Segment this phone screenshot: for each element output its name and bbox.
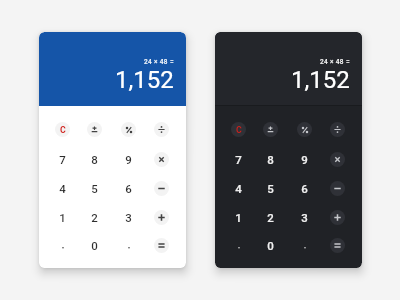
other: Multiply [158,156,165,163]
staticText: 4 [235,182,242,195]
staticText: 6 [125,182,132,195]
staticText: 1,152 [115,66,174,94]
button[interactable]: 2 [254,203,287,232]
button[interactable]: 9 [288,145,321,174]
button[interactable]: 9 [112,145,145,174]
staticText: 1 [59,211,66,224]
button[interactable]: 5 [254,174,287,203]
button[interactable]: Subtract [321,174,354,203]
button[interactable]: 1 [222,203,255,232]
button[interactable]: Divide [145,115,178,144]
button[interactable]: Multiply [321,145,354,174]
staticText: C [236,125,242,135]
staticText: 9 [301,153,308,166]
staticText: 5 [91,182,98,195]
button[interactable]: 5 [78,174,111,203]
button[interactable]: Equals [321,231,354,260]
staticText: 7 [235,153,242,166]
button[interactable]: Plus minus [78,115,111,144]
other: Decimal point [60,243,66,249]
other: Percent [301,126,309,134]
staticText: 24 × 48 = [144,58,174,66]
other: Equals [334,242,341,249]
button[interactable]: 4 [46,174,79,203]
other: Divide [158,126,165,133]
button[interactable]: Divide [321,115,354,144]
button[interactable]: Plus minus [254,115,287,144]
button[interactable]: 8 [78,145,111,174]
staticText: 8 [91,153,98,166]
button[interactable]: C [222,115,255,144]
button[interactable]: 6 [288,174,321,203]
button[interactable]: 6 [112,174,145,203]
button[interactable]: Decimal point [222,231,255,260]
button[interactable]: Subtract [145,174,178,203]
button[interactable]: Decimal point [112,231,145,260]
button[interactable]: 7 [46,145,79,174]
other: Plus minus [91,126,98,133]
other: Decimal point [236,243,242,249]
staticText: C [60,125,66,135]
button[interactable]: Decimal point [288,231,321,260]
button[interactable]: 2 [78,203,111,232]
staticText: 3 [301,211,308,224]
button[interactable]: 0 [254,231,287,260]
staticText: 2 [91,211,98,224]
other: Add [334,214,341,221]
staticText: 6 [301,182,308,195]
staticText: 24 × 48 = [320,58,350,66]
other: Decimal point [302,243,308,249]
button[interactable]: C [46,115,79,144]
button[interactable]: Add [321,203,354,232]
staticText: 1,152 [291,66,350,94]
button[interactable]: Equals [145,231,178,260]
other: Multiply [334,156,341,163]
button[interactable]: Add [145,203,178,232]
button[interactable]: 7 [222,145,255,174]
button[interactable]: Percent [112,115,145,144]
button[interactable]: 3 [288,203,321,232]
other: Subtract [334,185,341,192]
other: Subtract [158,185,165,192]
button[interactable]: 4 [222,174,255,203]
staticText: 7 [59,153,66,166]
button[interactable]: 3 [112,203,145,232]
other: Decimal point [126,243,132,249]
staticText: 2 [267,211,274,224]
staticText: 3 [125,211,132,224]
staticText: 4 [59,182,66,195]
button[interactable]: 8 [254,145,287,174]
staticText: 5 [267,182,274,195]
button[interactable]: Percent [288,115,321,144]
other: Add [158,214,165,221]
staticText: 1 [235,211,242,224]
staticText: 0 [91,239,98,252]
other: Percent [125,126,133,134]
other: Divide [334,126,341,133]
staticText: 0 [267,239,274,252]
other: Plus minus [267,126,274,133]
button[interactable]: Decimal point [46,231,79,260]
button[interactable]: 0 [78,231,111,260]
other: Equals [158,242,165,249]
button[interactable]: Multiply [145,145,178,174]
staticText: 8 [267,153,274,166]
staticText: 9 [125,153,132,166]
button[interactable]: 1 [46,203,79,232]
